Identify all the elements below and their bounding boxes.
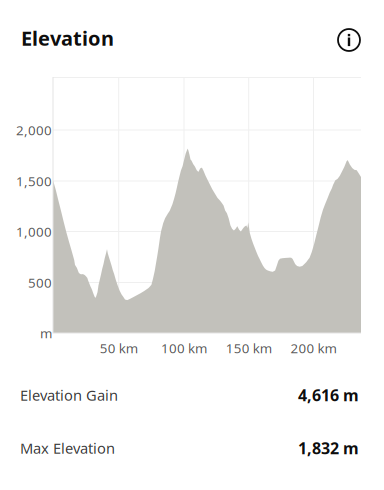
staticText: Max Elevation [20,438,115,458]
staticText: 1,000 [16,223,52,240]
staticText: 100 km [161,339,207,357]
staticText: 1,500 [16,172,52,190]
staticText: m [40,324,52,342]
staticText: Elevation [21,25,114,51]
staticText: 200 km [290,339,336,357]
staticText: 2,000 [16,121,52,139]
button[interactable]: Info [327,18,371,62]
staticText: 1,832 m [298,437,359,459]
staticText: 4,616 m [298,384,359,406]
staticText: Elevation Gain [20,385,118,405]
staticText: 500 [28,274,52,291]
staticText: 150 km [226,339,272,357]
staticText: 50 km [100,339,138,357]
